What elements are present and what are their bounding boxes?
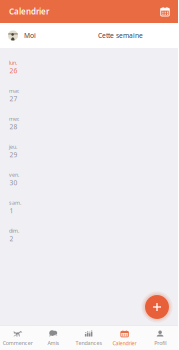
button[interactable]: Moi: [0, 23, 89, 48]
button[interactable]: mer.: [0, 109, 178, 137]
button[interactable]: Tendances: [71, 325, 107, 350]
staticText: 1: [9, 206, 13, 215]
staticText: Calendrier: [113, 340, 137, 347]
staticText: dim.: [9, 227, 19, 234]
button[interactable]: Amis: [36, 325, 71, 350]
button[interactable]: dim.: [0, 221, 178, 249]
staticText: Commencer: [3, 339, 33, 346]
button[interactable]: sam.: [0, 193, 178, 221]
button[interactable]: lun.: [0, 53, 178, 81]
staticText: mer.: [9, 115, 19, 122]
staticText: 26: [9, 66, 17, 75]
staticText: lun.: [9, 59, 17, 66]
staticText: Amis: [47, 339, 59, 346]
staticText: Profil: [154, 339, 166, 346]
button[interactable]: mar.: [0, 81, 178, 109]
staticText: 2: [9, 234, 13, 243]
staticText: Tendances: [75, 339, 102, 346]
staticText: Moi: [24, 31, 36, 40]
staticText: 30: [9, 178, 17, 187]
staticText: Calendrier: [9, 6, 49, 17]
staticText: jeu.: [9, 143, 17, 150]
button[interactable]: Commencer: [0, 325, 36, 350]
button[interactable]: Cette semaine: [89, 23, 178, 48]
staticText: 27: [9, 94, 17, 103]
staticText: 29: [9, 150, 17, 159]
staticText: mar.: [9, 87, 19, 94]
button[interactable]: ven.: [0, 165, 178, 193]
button[interactable]: jeu.: [0, 137, 178, 165]
staticText: ven.: [9, 171, 19, 178]
button[interactable]: Calendrier: [107, 325, 142, 350]
button[interactable]: Profil: [142, 325, 178, 350]
staticText: Cette semaine: [98, 31, 143, 40]
button[interactable]: Ajouter: [141, 291, 173, 323]
button[interactable]: Calendrier: [155, 0, 175, 23]
staticText: sam.: [9, 199, 21, 206]
staticText: 28: [9, 122, 17, 131]
